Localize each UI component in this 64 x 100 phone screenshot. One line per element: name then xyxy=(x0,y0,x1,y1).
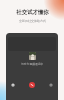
button[interactable]: Mute xyxy=(10,82,16,88)
button[interactable]: Speaker xyxy=(48,82,54,88)
staticText: 全新的社交体验方式 xyxy=(19,19,46,23)
button[interactable]: End call xyxy=(29,82,35,88)
staticText: 与对方视频通话中 xyxy=(21,62,44,66)
staticText: 社交试才懂你 xyxy=(16,9,49,16)
